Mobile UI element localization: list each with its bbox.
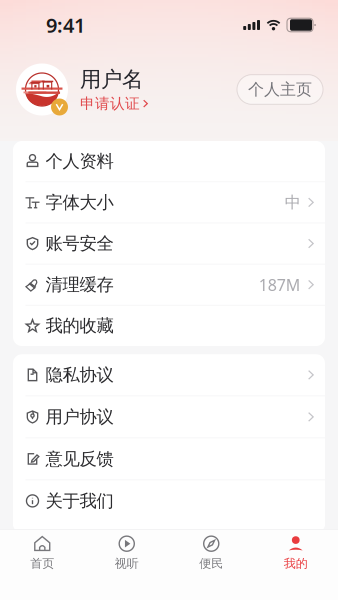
staticText: 便民 — [199, 556, 223, 571]
button[interactable]: 视听 — [84, 526, 169, 577]
button[interactable]: 首页 — [0, 526, 84, 577]
button[interactable]: 我的 — [253, 526, 338, 577]
button[interactable]: 账号安全 — [13, 223, 325, 264]
button[interactable]: 我的收藏 — [13, 306, 325, 346]
staticText: 隐私协议 — [45, 364, 113, 386]
staticText: 关于我们 — [45, 490, 113, 512]
staticText: 申请认证 — [80, 95, 140, 113]
staticText: 用户名 — [80, 66, 143, 93]
button[interactable]: 个人资料 — [13, 141, 325, 182]
staticText: 账号安全 — [45, 233, 113, 254]
staticText: 我的 — [284, 556, 308, 571]
staticText: 个人主页 — [248, 80, 312, 99]
button[interactable]: 用户协议 — [13, 396, 325, 438]
button[interactable]: 字体大小 — [13, 182, 325, 223]
button[interactable]: 申请认证 — [80, 95, 148, 113]
button[interactable]: 隐私协议 — [13, 354, 325, 396]
staticText: 个人资料 — [45, 151, 113, 172]
staticText: 我的收藏 — [45, 315, 113, 336]
staticText: 意见反馈 — [45, 448, 113, 470]
button[interactable]: 个人主页 — [237, 75, 323, 104]
button[interactable]: 意见反馈 — [13, 438, 325, 480]
staticText: 清理缓存 — [45, 274, 113, 295]
button[interactable]: 关于我们 — [13, 480, 325, 521]
staticText: 用户协议 — [45, 406, 113, 428]
staticText: 首页 — [30, 556, 54, 571]
button[interactable]: 便民 — [169, 526, 253, 577]
button[interactable]: Avatar — [14, 61, 70, 117]
staticText: 中 — [285, 192, 301, 212]
staticText: 视听 — [115, 556, 139, 571]
button[interactable]: 清理缓存 — [13, 264, 325, 306]
staticText: 187M — [259, 274, 301, 295]
staticText: 字体大小 — [45, 192, 113, 213]
staticText: 9:41 — [46, 12, 85, 38]
